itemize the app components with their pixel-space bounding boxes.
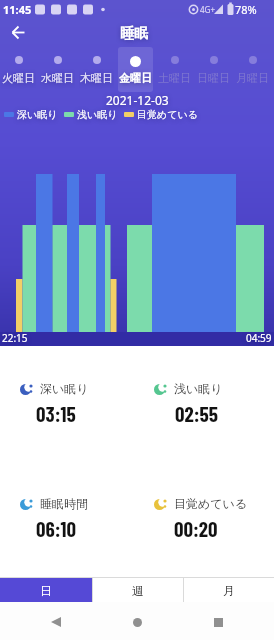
button[interactable]: 水曜日 [40, 47, 75, 92]
staticText: 日 [40, 583, 52, 598]
button[interactable]: 金曜日 [118, 47, 153, 92]
staticText: 土曜日 [158, 71, 191, 85]
staticText: 目覚めている [137, 108, 198, 121]
staticText: 深い眠り [40, 381, 89, 396]
staticText: 木曜日 [80, 71, 113, 85]
staticText: 03:15 [36, 401, 76, 426]
staticText: 深い眠り [17, 108, 58, 121]
staticText: 日曜日 [197, 71, 230, 85]
button[interactable]: 週 [92, 578, 183, 602]
button[interactable]: 月曜日 [235, 47, 270, 92]
staticText: 睡眠 [120, 25, 148, 43]
staticText: 金曜日 [119, 71, 152, 85]
staticText: 4G+ [200, 4, 215, 15]
staticText: 06:10 [36, 516, 77, 541]
button[interactable] [203, 607, 233, 637]
button[interactable]: 木曜日 [79, 47, 114, 92]
staticText: 04:59 [246, 331, 272, 345]
button[interactable]: 日曜日 [196, 47, 231, 92]
staticText: 週 [132, 583, 144, 598]
staticText: 睡眠時間 [40, 496, 88, 511]
staticText: 月曜日 [236, 71, 269, 85]
staticText: 22:15 [2, 331, 28, 345]
button[interactable] [122, 607, 152, 637]
staticText: 水曜日 [41, 71, 74, 85]
staticText: 浅い眠り [77, 108, 118, 121]
button[interactable] [4, 18, 32, 46]
button[interactable]: 日 [0, 578, 92, 602]
staticText: 02:55 [175, 401, 218, 426]
button[interactable]: 土曜日 [157, 47, 192, 92]
button[interactable] [41, 607, 71, 637]
staticText: 00:20 [174, 516, 218, 541]
staticText: 11:45 [3, 2, 32, 17]
staticText: 2021-12-03 [106, 92, 169, 108]
staticText: 目覚めている [174, 496, 248, 511]
button[interactable]: 火曜日 [0, 47, 36, 92]
staticText: 浅い眠り [174, 381, 223, 396]
button[interactable]: 月 [183, 578, 274, 602]
staticText: 月 [223, 583, 235, 598]
staticText: 78% [235, 2, 257, 17]
staticText: 火曜日 [2, 71, 35, 85]
